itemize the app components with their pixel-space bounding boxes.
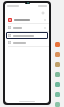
button[interactable] [5, 39, 49, 46]
button[interactable] [5, 24, 49, 31]
button[interactable]: Add [40, 10, 46, 16]
button[interactable] [6, 32, 48, 39]
button[interactable] [5, 16, 49, 23]
